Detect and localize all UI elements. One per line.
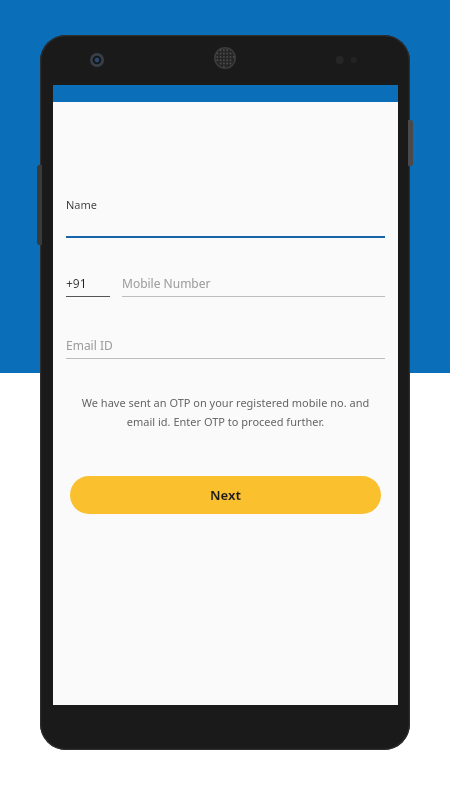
button[interactable]: Name: [66, 197, 385, 238]
button[interactable]: Mobile Number: [122, 275, 385, 297]
button[interactable]: +91: [66, 275, 110, 297]
staticText: Email ID: [66, 337, 113, 353]
staticText: We have sent an OTP on your registered m…: [70, 395, 381, 429]
staticText: Next: [210, 486, 242, 504]
staticText: +91: [66, 275, 87, 291]
staticText: Name: [66, 197, 98, 212]
button[interactable]: Email ID: [66, 337, 385, 359]
button[interactable]: Next: [70, 476, 381, 514]
staticText: Mobile Number: [122, 275, 211, 291]
